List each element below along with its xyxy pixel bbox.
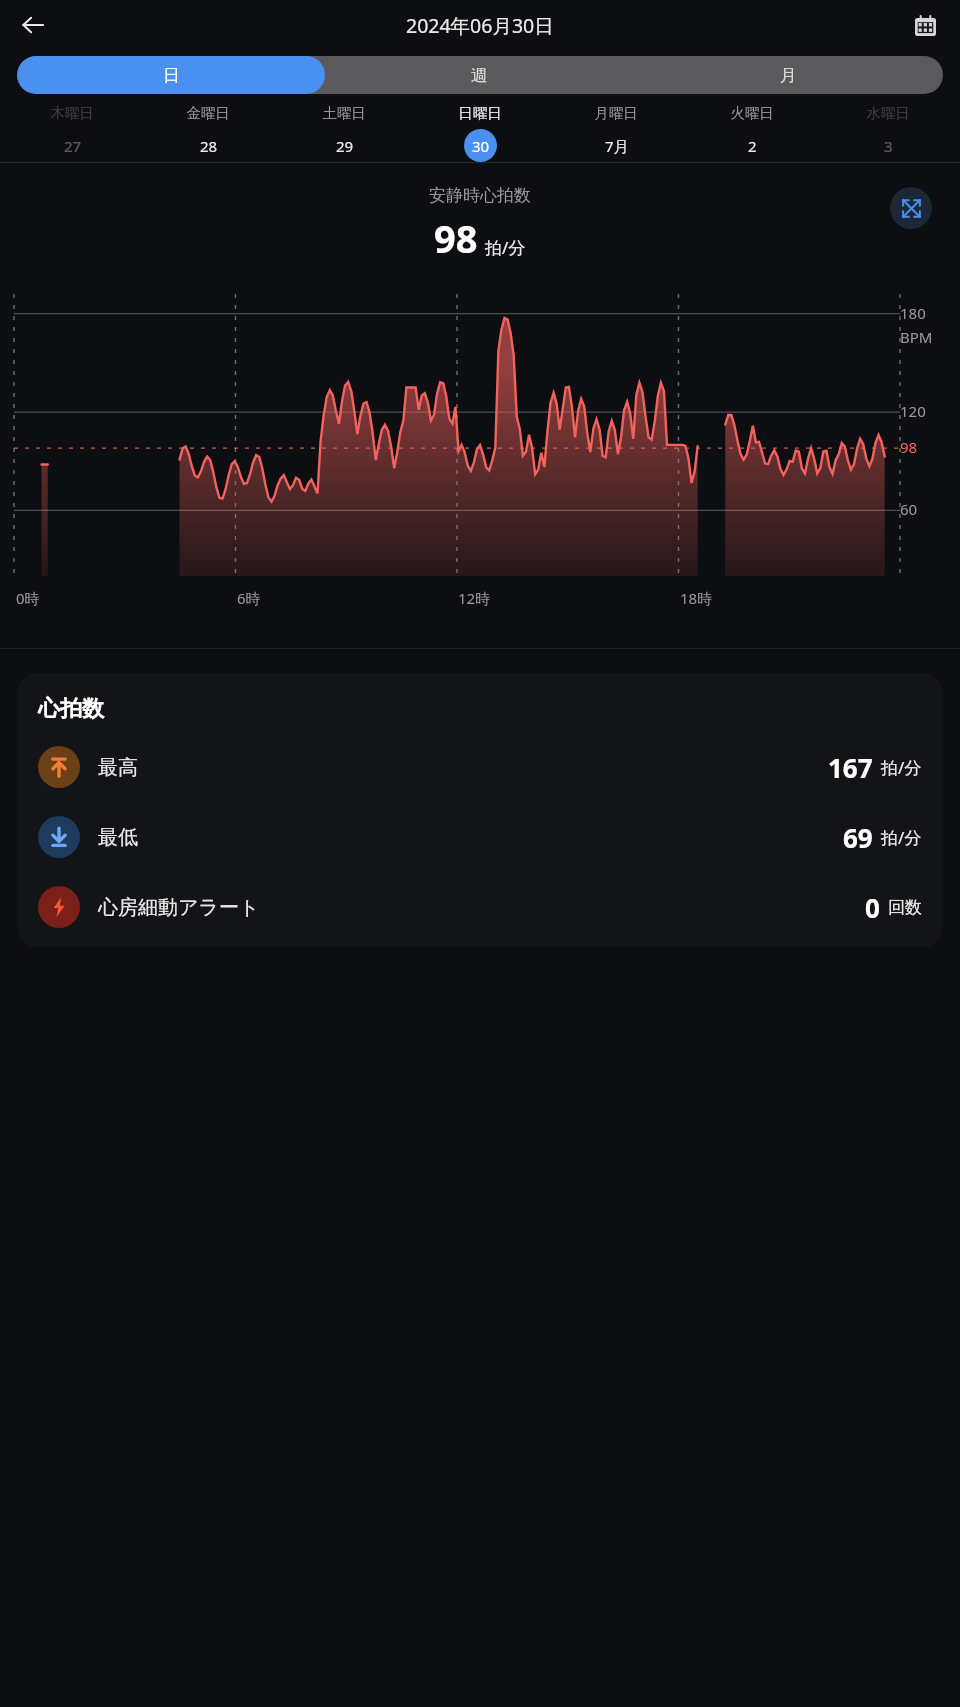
staticText: 月曜日	[594, 104, 638, 122]
staticText: 拍/分	[881, 756, 922, 779]
button[interactable]: 火曜日	[684, 104, 820, 162]
button[interactable]: 木曜日	[4, 104, 140, 162]
staticText: 日曜日	[458, 104, 502, 122]
button[interactable]: 心房細動アラート	[38, 879, 922, 935]
staticText: BPM	[900, 327, 933, 347]
button[interactable]: 金曜日	[140, 104, 276, 162]
button[interactable]: 土曜日	[276, 104, 412, 162]
staticText: 火曜日	[730, 104, 774, 122]
staticText: 60	[900, 499, 918, 519]
button[interactable]: Back	[10, 2, 56, 48]
staticText: 拍/分	[881, 826, 922, 849]
staticText: 日	[163, 65, 180, 86]
staticText: 7月	[605, 136, 629, 156]
button[interactable]: Calendar	[904, 4, 946, 46]
staticText: 2	[748, 136, 757, 156]
button[interactable]: 月曜日	[548, 104, 684, 162]
staticText: 最低	[98, 825, 138, 850]
staticText: 120	[900, 401, 926, 421]
staticText: 安静時心拍数	[429, 185, 531, 206]
staticText: 30	[472, 136, 490, 156]
button[interactable]: Expand chart	[890, 187, 932, 229]
staticText: 180	[900, 303, 926, 323]
staticText: 木曜日	[50, 104, 94, 122]
staticText: 29	[336, 136, 354, 156]
button[interactable]: 日曜日	[412, 104, 548, 162]
staticText: 水曜日	[866, 104, 910, 122]
staticText: 6時	[237, 588, 261, 608]
staticText: 98	[900, 437, 918, 457]
staticText: 28	[200, 136, 218, 156]
staticText: 12時	[458, 588, 491, 608]
staticText: 拍/分	[485, 236, 526, 259]
staticText: 27	[64, 136, 82, 156]
staticText: 心拍数	[38, 695, 104, 723]
staticText: 金曜日	[186, 104, 230, 122]
button[interactable]: 月	[634, 56, 943, 94]
staticText: 167	[828, 750, 873, 785]
staticText: 2024年06月30日	[406, 12, 554, 39]
staticText: 98	[434, 212, 478, 264]
button[interactable]: 日	[17, 56, 325, 94]
staticText: 69	[843, 820, 873, 855]
staticText: 0時	[16, 588, 40, 608]
staticText: 18時	[680, 588, 713, 608]
staticText: 心房細動アラート	[98, 895, 260, 920]
staticText: 3	[884, 136, 893, 156]
button[interactable]: 週	[325, 56, 634, 94]
button[interactable]: 最高	[38, 739, 922, 795]
button[interactable]: 水曜日	[820, 104, 956, 162]
staticText: 回数	[888, 897, 922, 918]
staticText: 月	[780, 65, 797, 86]
staticText: 最高	[98, 755, 138, 780]
staticText: 土曜日	[322, 104, 366, 122]
staticText: 0	[865, 890, 880, 925]
staticText: 週	[471, 65, 488, 86]
button[interactable]: 最低	[38, 809, 922, 865]
